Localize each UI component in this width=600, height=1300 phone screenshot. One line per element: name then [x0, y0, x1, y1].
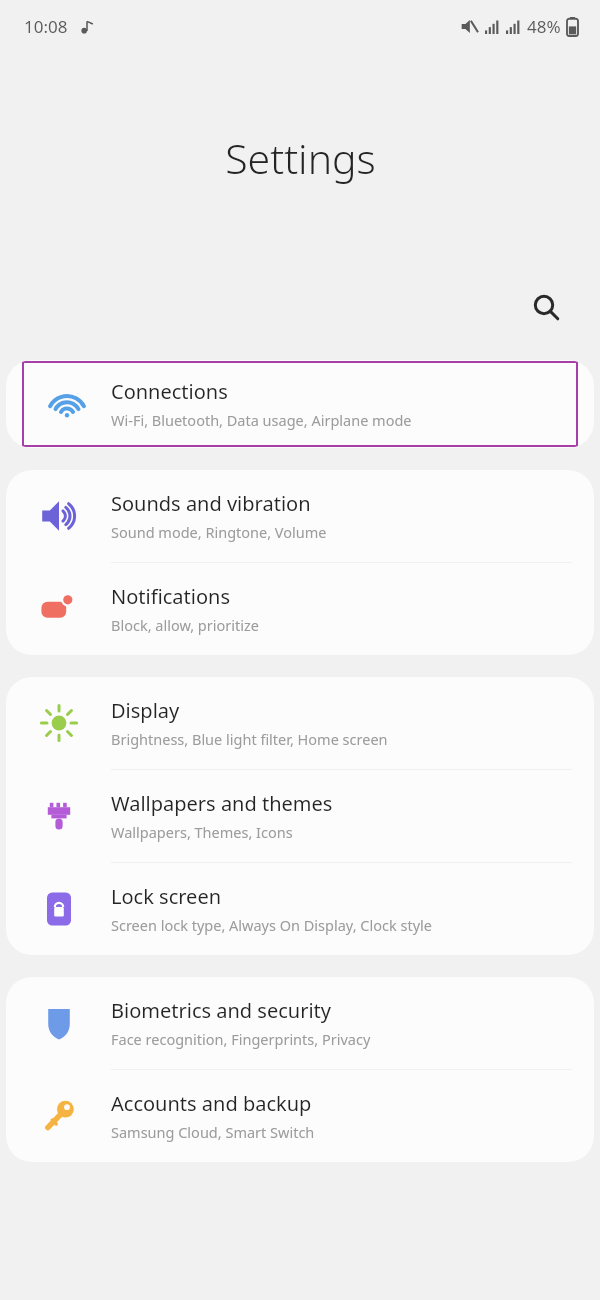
staticText: Sound mode, Ringtone, Volume — [111, 522, 327, 542]
staticText: Samsung Cloud, Smart Switch — [111, 1122, 315, 1142]
staticText: Connections — [111, 378, 228, 405]
staticText: Biometrics and security — [111, 997, 331, 1024]
button[interactable]: Sounds and vibration — [6, 470, 594, 562]
staticText: Wallpapers and themes — [111, 790, 333, 817]
button[interactable]: Accounts and backup — [6, 1070, 594, 1162]
button[interactable]: Notifications — [6, 563, 594, 655]
staticText: Sounds and vibration — [111, 490, 311, 517]
staticText: Wallpapers, Themes, Icons — [111, 822, 293, 842]
staticText: 10:08 — [24, 15, 68, 38]
staticText: Settings — [225, 130, 376, 186]
button[interactable]: Search — [522, 283, 572, 333]
staticText: Wi-Fi, Bluetooth, Data usage, Airplane m… — [111, 410, 412, 430]
staticText: Display — [111, 697, 180, 724]
staticText: Block, allow, prioritize — [111, 615, 259, 635]
staticText: Screen lock type, Always On Display, Clo… — [111, 915, 432, 935]
staticText: Brightness, Blue light filter, Home scre… — [111, 729, 388, 749]
staticText: Face recognition, Fingerprints, Privacy — [111, 1029, 371, 1049]
button[interactable]: Connections — [22, 361, 578, 447]
button[interactable]: Lock screen — [6, 863, 594, 955]
staticText: 48% — [527, 15, 561, 38]
button[interactable]: Display — [6, 677, 594, 769]
staticText: Lock screen — [111, 883, 222, 910]
staticText: Accounts and backup — [111, 1090, 312, 1117]
button[interactable]: Wallpapers and themes — [6, 770, 594, 862]
staticText: Notifications — [111, 583, 230, 610]
button[interactable]: Biometrics and security — [6, 977, 594, 1069]
